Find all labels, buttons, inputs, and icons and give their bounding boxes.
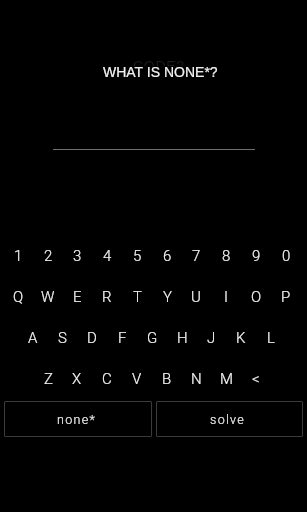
staticText: 3 <box>73 247 82 265</box>
button[interactable]: Q <box>3 280 33 314</box>
button[interactable]: 0 <box>271 239 301 273</box>
button[interactable]: < <box>241 362 271 396</box>
staticText: CODE? <box>133 58 185 66</box>
staticText: F <box>118 329 127 347</box>
button[interactable]: Y <box>152 280 182 314</box>
button[interactable]: 2 <box>33 239 63 273</box>
staticText: A <box>28 329 38 347</box>
button[interactable]: P <box>271 280 301 314</box>
staticText: H <box>177 329 188 347</box>
staticText: D <box>87 329 97 347</box>
staticText: Q <box>13 288 24 306</box>
staticText: W <box>41 288 55 306</box>
button[interactable]: A <box>18 321 48 355</box>
staticText: Z <box>44 370 53 388</box>
button[interactable]: T <box>122 280 152 314</box>
button[interactable]: L <box>256 321 286 355</box>
staticText: J <box>207 329 216 347</box>
button[interactable]: 1 <box>3 239 33 273</box>
staticText: N <box>191 370 202 388</box>
button[interactable]: R <box>92 280 122 314</box>
button[interactable]: S <box>47 321 77 355</box>
button[interactable]: O <box>241 280 271 314</box>
staticText: 9 <box>252 247 261 265</box>
staticText: E <box>73 288 82 306</box>
staticText: M <box>220 370 233 388</box>
button[interactable]: W <box>33 280 63 314</box>
staticText: 0 <box>282 247 291 265</box>
button[interactable]: J <box>196 321 226 355</box>
staticText: R <box>102 288 112 306</box>
staticText: T <box>133 288 142 306</box>
staticText: 4 <box>103 247 112 265</box>
button[interactable]: I <box>211 280 241 314</box>
button[interactable]: 4 <box>92 239 122 273</box>
button[interactable]: N <box>181 362 211 396</box>
staticText: G <box>147 329 158 347</box>
staticText: I <box>224 288 228 306</box>
button[interactable]: U <box>181 280 211 314</box>
staticText: X <box>72 370 82 388</box>
button[interactable]: Z <box>33 362 63 396</box>
button[interactable]: F <box>107 321 137 355</box>
staticText: < <box>252 370 260 388</box>
staticText: 1 <box>14 247 23 265</box>
button[interactable]: X <box>62 362 92 396</box>
staticText: K <box>236 329 246 347</box>
staticText: 2 <box>44 247 53 265</box>
button[interactable]: 3 <box>62 239 92 273</box>
staticText: WHAT IS NONE*? <box>103 64 218 80</box>
button[interactable]: solve <box>156 401 303 437</box>
staticText: Y <box>163 288 172 306</box>
button[interactable]: B <box>152 362 182 396</box>
button[interactable]: C <box>92 362 122 396</box>
staticText: P <box>281 288 291 306</box>
button[interactable]: E <box>62 280 92 314</box>
staticText: V <box>132 370 142 388</box>
button[interactable]: D <box>77 321 107 355</box>
button[interactable]: 9 <box>241 239 271 273</box>
staticText: solve <box>210 412 246 427</box>
staticText: O <box>251 288 262 306</box>
staticText: none* <box>57 412 97 427</box>
staticText: 6 <box>163 247 172 265</box>
button[interactable]: H <box>167 321 197 355</box>
button[interactable]: 5 <box>122 239 152 273</box>
staticText: L <box>267 329 275 347</box>
button[interactable]: 7 <box>181 239 211 273</box>
staticText: 7 <box>192 247 201 265</box>
staticText: U <box>191 288 201 306</box>
button[interactable]: M <box>211 362 241 396</box>
staticText: 5 <box>133 247 142 265</box>
button[interactable]: V <box>122 362 152 396</box>
button[interactable]: G <box>137 321 167 355</box>
button[interactable]: K <box>226 321 256 355</box>
staticText: B <box>162 370 172 388</box>
button[interactable]: 8 <box>211 239 241 273</box>
button[interactable]: none* <box>4 401 152 437</box>
staticText: 8 <box>222 247 231 265</box>
staticText: S <box>58 329 67 347</box>
button[interactable]: 6 <box>152 239 182 273</box>
staticText: C <box>102 370 112 388</box>
